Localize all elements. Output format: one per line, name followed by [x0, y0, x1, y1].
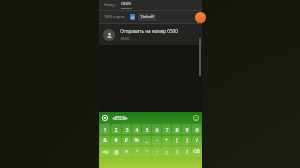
staticText: Отправить на номер 0500 [120, 28, 178, 34]
staticText: 1 [103, 126, 107, 133]
staticText: & [103, 137, 107, 144]
staticText: 0500 [121, 1, 131, 7]
button[interactable]: + [162, 136, 171, 145]
staticText: 2 [114, 126, 118, 133]
staticText: / [196, 137, 198, 144]
button[interactable]: 9 [182, 124, 191, 134]
staticText: : [156, 149, 158, 155]
staticText: «0500» [112, 115, 128, 121]
staticText: 5 [145, 126, 149, 133]
button[interactable]: " [132, 147, 141, 156]
button[interactable]: ; [162, 147, 171, 156]
button[interactable]: ? [182, 147, 191, 156]
staticText: ' [146, 149, 148, 155]
staticText: 8 [175, 126, 179, 133]
button[interactable]: Отправить на номер 0500 [99, 24, 202, 45]
staticText: Tinkoff [140, 14, 154, 20]
button[interactable]: % [132, 136, 141, 145]
staticText: Кому: [104, 2, 116, 8]
staticText: ⌫ [193, 149, 200, 154]
button[interactable]: ( [172, 136, 181, 145]
button[interactable]: ₽ [122, 136, 131, 145]
button[interactable]: @ [111, 147, 121, 156]
staticText: " [136, 149, 138, 155]
staticText: ? [186, 149, 188, 155]
button[interactable]: ! [172, 147, 181, 156]
staticText: ) [186, 137, 188, 144]
staticText: * [125, 149, 128, 155]
staticText: 3 [125, 126, 129, 133]
button[interactable]: Кому: [99, 0, 202, 10]
staticText: - [156, 137, 158, 144]
staticText: 7 [165, 126, 169, 133]
staticText: =\< [102, 149, 109, 155]
button[interactable]: 3 [122, 124, 131, 134]
button[interactable]: 1 [100, 124, 110, 134]
button[interactable]: 0 [192, 124, 201, 134]
staticText: 0500 [120, 36, 130, 41]
button[interactable]: 8 [172, 124, 181, 134]
button[interactable]: «0500» [112, 115, 128, 121]
button[interactable]: Send message [195, 12, 206, 23]
staticText: # [114, 137, 118, 144]
button[interactable]: / [192, 136, 201, 145]
button[interactable]: =\< [100, 147, 110, 156]
button[interactable]: : [152, 147, 161, 156]
staticText: ! [176, 149, 178, 155]
button[interactable]: # [111, 136, 121, 145]
staticText: 6 [155, 126, 159, 133]
button[interactable]: SIM-карта [99, 11, 202, 23]
button[interactable]: 7 [162, 124, 171, 134]
button[interactable]: ) [182, 136, 191, 145]
staticText: ; [166, 149, 168, 155]
button[interactable]: 2 [111, 124, 121, 134]
staticText: ( [176, 137, 178, 144]
staticText: 9 [185, 126, 189, 133]
staticText: % [134, 137, 139, 144]
button[interactable]: _ [142, 136, 151, 145]
button[interactable]: 6 [152, 124, 161, 134]
staticText: @ [114, 149, 119, 155]
staticText: + [165, 137, 168, 144]
button[interactable]: - [152, 136, 161, 145]
button[interactable]: ' [142, 147, 151, 156]
button[interactable]: 4 [132, 124, 141, 134]
staticText: SIM-карта [104, 14, 125, 20]
button[interactable]: & [100, 136, 110, 145]
staticText: ₽ [125, 137, 128, 144]
button[interactable]: ⌫ [192, 147, 201, 156]
staticText: 4 [135, 126, 139, 133]
staticText: 0 [195, 126, 199, 133]
button[interactable]: Emoji [193, 115, 199, 121]
button[interactable]: 5 [142, 124, 151, 134]
button[interactable]: Keyboard settings [102, 115, 108, 121]
button[interactable]: * [122, 147, 131, 156]
staticText: _ [145, 137, 148, 144]
